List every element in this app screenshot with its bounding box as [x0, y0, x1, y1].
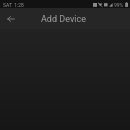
button[interactable]: Back: [0, 8, 22, 29]
staticText: 99%: [114, 2, 124, 8]
staticText: Add Device: [41, 14, 86, 25]
staticText: SAT 1:28: [3, 2, 24, 8]
